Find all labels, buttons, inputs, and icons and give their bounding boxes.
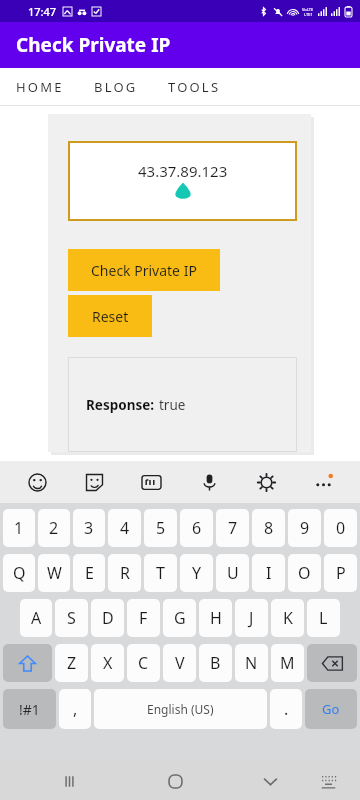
staticText: 1 [14,517,24,539]
staticText: J [249,607,254,629]
button[interactable]: , [59,689,91,729]
staticText: P [336,562,346,584]
staticText: 7 [228,517,238,539]
button[interactable]: U [216,554,249,592]
button[interactable]: !#1 [3,689,56,729]
staticText: !#1 [19,700,40,719]
button[interactable]: Voice input [194,467,224,497]
button[interactable]: P [324,554,357,592]
button[interactable]: S [55,599,88,637]
button[interactable]: Z [55,644,88,682]
button[interactable]: Keyboard settings [251,467,281,497]
button[interactable]: M [271,644,304,682]
staticText: T [156,562,165,584]
staticText: VoLTE [302,7,314,12]
button[interactable]: Backspace [307,644,357,682]
staticText: . [284,698,289,720]
staticText: 0 [336,517,346,539]
button[interactable]: N [235,644,268,682]
button[interactable]: V [163,644,196,682]
staticText: G [174,607,186,629]
staticText: F [139,607,148,629]
button[interactable]: GIF [136,467,166,497]
staticText: Q [13,562,26,584]
staticText: 6 [192,517,202,539]
button[interactable]: Switch keyboard [311,764,345,798]
button[interactable]: More options [308,467,338,497]
staticText: X [103,652,113,674]
staticText: Z [67,652,77,674]
staticText: HOME [16,78,64,96]
staticText: R [120,562,130,584]
button[interactable]: K [271,599,304,637]
staticText: 9 [300,517,310,539]
button[interactable]: X [91,644,124,682]
staticText: LTE1 [304,12,313,17]
staticText: D [102,607,114,629]
button[interactable]: F [127,599,160,637]
staticText: Go [322,700,340,718]
staticText: U [227,562,239,584]
button[interactable]: Hide keyboard [253,764,287,798]
button[interactable]: 9 [288,509,321,547]
button[interactable]: D [91,599,124,637]
staticText: N [245,652,258,674]
button[interactable]: 4 [108,509,141,547]
button[interactable]: Reset [68,295,152,337]
button[interactable]: E [73,554,105,592]
staticText: S [67,607,76,629]
staticText: K [283,607,293,629]
staticText: English (US) [147,701,214,717]
staticText: 17:47 [28,4,57,19]
button[interactable]: Go [305,689,357,729]
staticText: C [138,652,149,674]
button[interactable]: Shift [3,644,52,682]
button[interactable]: W [38,554,70,592]
staticText: 5 [156,517,166,539]
staticText: 4 [120,517,130,539]
button[interactable]: HOME [14,74,66,100]
button[interactable]: English (US) [94,689,267,729]
staticText: L [319,607,328,629]
button[interactable]: C [127,644,160,682]
button[interactable]: Y [180,554,213,592]
button[interactable]: Home [158,764,192,798]
button[interactable]: 6 [180,509,213,547]
button[interactable]: 5 [144,509,177,547]
button[interactable]: H [199,599,232,637]
button[interactable]: 3 [73,509,105,547]
staticText: A [31,607,42,629]
button[interactable]: A [20,599,52,637]
button[interactable]: Check Private IP [68,249,220,291]
button[interactable]: Recent apps [52,764,86,798]
staticText: Check Private IP [16,32,171,58]
button[interactable]: I [252,554,285,592]
button[interactable]: R [108,554,141,592]
button[interactable]: O [288,554,321,592]
button[interactable]: Stickers [79,467,109,497]
button[interactable]: 0 [324,509,357,547]
staticText: BLOG [94,78,138,96]
button[interactable]: Q [3,554,35,592]
staticText: E [85,562,94,584]
button[interactable]: 43.37.89.123 [68,141,297,221]
button[interactable]: Emoji [22,467,52,497]
button[interactable]: J [235,599,268,637]
staticText: V [175,652,185,674]
staticText: O [298,562,311,584]
button[interactable]: T [144,554,177,592]
button[interactable]: 1 [3,509,35,547]
button[interactable]: . [270,689,302,729]
staticText: M [280,652,295,674]
button[interactable]: 8 [252,509,285,547]
button[interactable]: TOOLS [166,74,223,100]
staticText: Y [192,562,202,584]
button[interactable]: L [307,599,340,637]
button[interactable]: B [199,644,232,682]
button[interactable]: 2 [38,509,70,547]
button[interactable]: BLOG [92,74,140,100]
button[interactable]: 7 [216,509,249,547]
button[interactable]: G [163,599,196,637]
staticText: H [210,607,222,629]
staticText: 8 [264,517,274,539]
